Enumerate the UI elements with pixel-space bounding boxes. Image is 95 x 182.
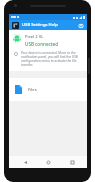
other: Android [13,34,21,42]
staticText: Your device is connected. Move to the no… [21,51,83,67]
button[interactable]: More options [77,22,84,29]
staticText: Pixel 2 XL [25,34,44,40]
other: Files [15,85,22,94]
button[interactable]: Back [17,156,33,168]
button[interactable]: Files [9,78,87,101]
staticText: USB connected [25,41,59,47]
staticText: Files [28,87,37,93]
button[interactable]: Home [40,156,56,168]
staticText: USB Settings Help [22,22,58,28]
button[interactable]: App icon [12,22,19,29]
button[interactable]: Recent apps [64,156,80,168]
